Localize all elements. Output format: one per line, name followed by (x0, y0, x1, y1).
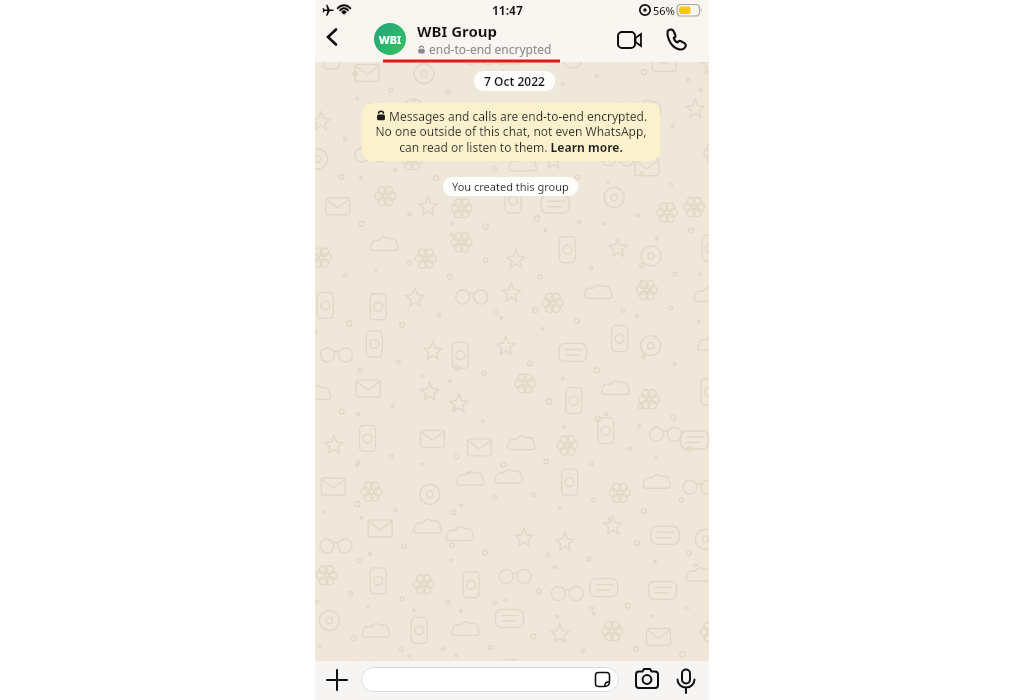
staticText: 11:47 (492, 2, 523, 18)
button[interactable]: WBI Group (417, 21, 552, 57)
staticText: 56% (653, 3, 675, 18)
button[interactable] (663, 26, 689, 52)
button[interactable] (321, 26, 343, 48)
staticText: ■ Messages and calls are end-to-end encr… (372, 108, 650, 156)
button[interactable]: ■ Messages and calls are end-to-end encr… (362, 103, 660, 161)
staticText: 7 Oct 2022 (484, 73, 545, 89)
button[interactable] (323, 666, 351, 694)
staticText: WBI (379, 32, 402, 47)
staticText: WBI Group (417, 21, 498, 41)
button[interactable] (673, 668, 699, 698)
button[interactable]: You created this group (443, 177, 578, 196)
staticText: end-to-end encrypted (429, 41, 552, 57)
button[interactable] (361, 667, 619, 692)
button[interactable]: 7 Oct 2022 (474, 71, 555, 91)
button[interactable] (615, 26, 645, 54)
button[interactable]: WBI (374, 23, 406, 55)
staticText: You created this group (452, 179, 569, 194)
button[interactable] (633, 668, 661, 692)
